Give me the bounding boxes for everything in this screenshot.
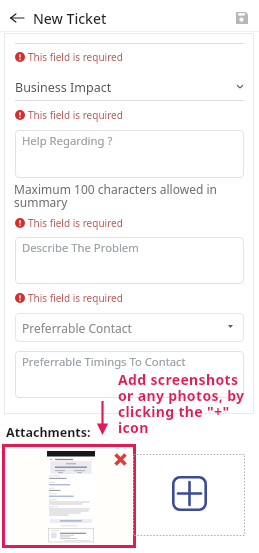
staticText: Preferrable Contact (22, 320, 132, 336)
staticText: summary (14, 194, 68, 210)
staticText: Maximum 100 characters allowed in (14, 181, 217, 197)
staticText: This field is required (28, 108, 123, 122)
button[interactable]: Save (232, 8, 251, 27)
button[interactable] (2, 444, 136, 548)
button[interactable]: Preferrable Timings To Contact (15, 351, 244, 398)
staticText: New Ticket (33, 9, 107, 28)
button[interactable]: Business Impact (15, 78, 244, 101)
button[interactable]: Preferrable Contact (15, 313, 244, 342)
button[interactable]: Remove attachment (112, 451, 128, 467)
staticText: or any photos, by (118, 386, 245, 405)
button[interactable]: Add attachment (133, 454, 245, 536)
staticText: Add screenshots (118, 370, 239, 389)
button[interactable]: Describe The Problem (15, 237, 244, 284)
staticText: Attachments: (6, 424, 91, 441)
staticText: icon (118, 418, 149, 437)
staticText: This field is required (28, 216, 123, 230)
staticText: Business Impact (15, 79, 112, 96)
staticText: Preferrable Timings To Contact (22, 354, 186, 369)
staticText: This field is required (28, 50, 123, 64)
staticText: This field is required (28, 291, 123, 305)
staticText: clicking the "+" (118, 402, 230, 421)
staticText: Help Regarding ? (22, 133, 113, 148)
button[interactable]: Help Regarding ? (15, 130, 244, 178)
staticText: Describe The Problem (22, 240, 139, 255)
button[interactable]: Back (8, 9, 26, 27)
